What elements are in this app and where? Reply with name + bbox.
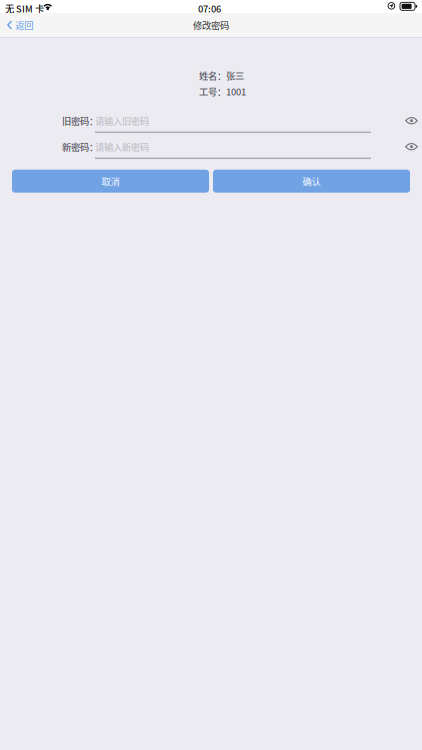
staticText: 姓名：张三 bbox=[199, 69, 244, 82]
staticText: 新密码： bbox=[62, 140, 98, 153]
staticText: 返回 bbox=[15, 18, 33, 32]
button[interactable]: 取消 bbox=[12, 170, 209, 193]
staticText: 无 SIM 卡 bbox=[5, 2, 44, 15]
button[interactable]: 返回 bbox=[0, 13, 43, 37]
button[interactable]: 显示旧密码 bbox=[405, 116, 418, 125]
staticText: 修改密码 bbox=[193, 18, 229, 32]
staticText: 旧密码： bbox=[62, 114, 98, 127]
staticText: 工号：1001 bbox=[199, 85, 246, 98]
button[interactable]: 显示新密码 bbox=[405, 142, 418, 151]
staticText: 取消 bbox=[101, 174, 119, 188]
button[interactable]: 确认 bbox=[213, 170, 410, 193]
staticText: 确认 bbox=[302, 174, 320, 188]
staticText: 07:06 bbox=[198, 2, 221, 15]
staticText: 请输入旧密码 bbox=[95, 114, 149, 127]
staticText: 请输入新密码 bbox=[95, 140, 149, 153]
